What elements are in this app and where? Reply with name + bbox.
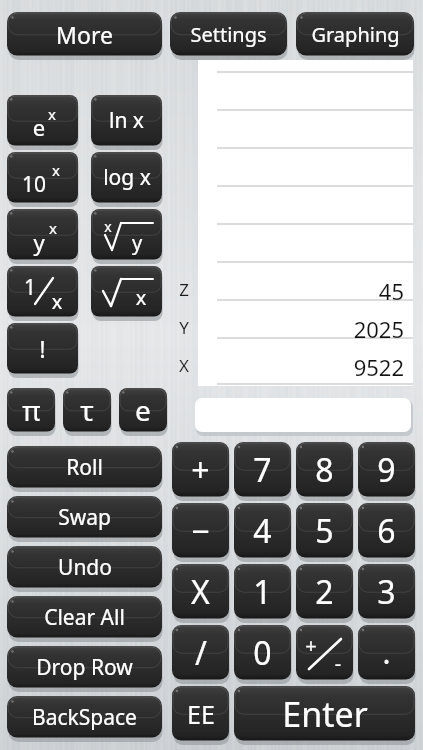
button[interactable]: Entry field (195, 398, 413, 436)
staticText: 3 (377, 570, 396, 614)
staticText: 8 (315, 448, 334, 492)
staticText: 0 (253, 631, 272, 675)
staticText: y (29, 227, 49, 260)
button[interactable]: Drop Row (7, 646, 162, 690)
staticText: Roll (66, 453, 103, 482)
staticText: / (195, 631, 207, 675)
staticText: e (29, 112, 49, 145)
staticText: + (300, 632, 322, 662)
button[interactable]: + (172, 442, 229, 499)
staticText: X (174, 354, 194, 380)
staticText: ! (39, 332, 46, 365)
button[interactable]: 1 (234, 564, 291, 621)
button[interactable]: X (172, 564, 229, 621)
staticText: Enter (282, 691, 368, 737)
staticText: ln x (109, 106, 144, 135)
button[interactable]: Clear All (7, 596, 162, 640)
staticText: Y (174, 316, 194, 342)
staticText: x (43, 104, 61, 127)
staticText: 5 (315, 509, 334, 553)
staticText: Undo (58, 553, 112, 582)
staticText: Clear All (44, 603, 125, 632)
staticText: X (191, 570, 210, 614)
button[interactable]: xth root of y (91, 209, 162, 262)
staticText: x (47, 288, 67, 318)
staticText: 1 (20, 273, 40, 305)
button[interactable] (7, 95, 78, 148)
staticText: − (191, 509, 210, 553)
staticText: 2 (315, 570, 334, 614)
button[interactable]: 6 (358, 503, 415, 560)
button[interactable]: plus minus sign (296, 625, 353, 682)
button[interactable]: 5 (296, 503, 353, 560)
staticText: 4 (253, 509, 272, 553)
button[interactable]: 7 (234, 442, 291, 499)
staticText: 2025 (280, 314, 404, 347)
button[interactable] (7, 209, 78, 262)
staticText: τ (80, 391, 94, 429)
button[interactable]: 2 (296, 564, 353, 621)
staticText: 9 (377, 448, 396, 492)
staticText: 7 (253, 448, 272, 492)
staticText: 10 (19, 170, 49, 202)
button[interactable]: τ (63, 388, 111, 434)
staticText: 45 (280, 276, 404, 309)
staticText: π (22, 391, 41, 429)
staticText: Graphing (311, 21, 400, 48)
button[interactable] (7, 152, 78, 205)
staticText: EE (187, 697, 215, 731)
staticText: log x (103, 163, 151, 192)
button[interactable]: / (172, 625, 229, 682)
button[interactable]: e (119, 388, 167, 434)
button[interactable]: Enter (234, 686, 415, 743)
button[interactable]: Roll (7, 446, 162, 490)
button[interactable]: . (358, 625, 415, 682)
button[interactable]: More (7, 12, 162, 58)
staticText: x (44, 218, 62, 241)
staticText: + (191, 448, 210, 492)
button[interactable]: 9 (358, 442, 415, 499)
button[interactable]: EE (172, 686, 229, 743)
button[interactable]: ln x (91, 95, 162, 148)
staticText: Drop Row (36, 653, 133, 682)
button[interactable]: 0 (234, 625, 291, 682)
staticText: More (56, 19, 113, 50)
staticText: - (327, 650, 349, 680)
staticText: Swap (58, 503, 111, 532)
staticText: y (127, 229, 147, 259)
staticText: e (135, 391, 151, 429)
button[interactable]: log x (91, 152, 162, 205)
button[interactable]: 8 (296, 442, 353, 499)
staticText: BackSpace (32, 703, 137, 732)
staticText: x (100, 217, 116, 238)
staticText: x (131, 284, 151, 314)
button[interactable]: square root (91, 266, 162, 319)
button[interactable]: ! (7, 323, 78, 376)
button[interactable]: BackSpace (7, 696, 162, 740)
staticText: x (47, 160, 65, 183)
staticText: 1 (253, 570, 272, 614)
staticText: Z (174, 278, 194, 304)
button[interactable]: 3 (358, 564, 415, 621)
button[interactable]: reciprocal (7, 266, 78, 319)
staticText: 6 (377, 509, 396, 553)
button[interactable]: Settings (170, 12, 287, 58)
button[interactable]: Swap (7, 496, 162, 540)
button[interactable]: π (7, 388, 55, 434)
button[interactable]: − (172, 503, 229, 560)
staticText: . (382, 632, 391, 673)
staticText: 9522 (280, 352, 404, 385)
button[interactable]: Undo (7, 546, 162, 590)
staticText: Settings (190, 21, 267, 48)
button[interactable]: 4 (234, 503, 291, 560)
button[interactable]: Graphing (296, 12, 414, 58)
